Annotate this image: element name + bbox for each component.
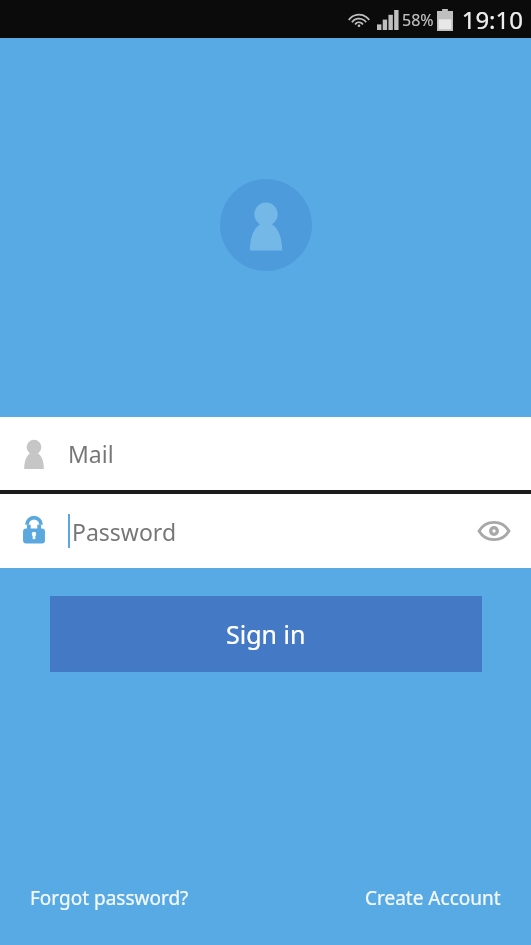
button[interactable]: Show password xyxy=(457,514,531,548)
staticText: Password xyxy=(72,516,177,547)
staticText: 58% xyxy=(402,9,434,31)
staticText: Create Account xyxy=(365,885,501,911)
staticText: Mail xyxy=(68,438,114,469)
button[interactable]: Forgot password? xyxy=(16,877,203,919)
button[interactable]: Password input field xyxy=(0,494,531,568)
staticText: Sign in xyxy=(226,617,306,651)
button[interactable]: Sign in xyxy=(50,596,482,672)
button[interactable]: Mail input field xyxy=(0,417,531,490)
button[interactable]: Create Account xyxy=(351,877,515,919)
staticText: 19:10 xyxy=(461,3,523,36)
staticText: Forgot password? xyxy=(30,885,189,911)
